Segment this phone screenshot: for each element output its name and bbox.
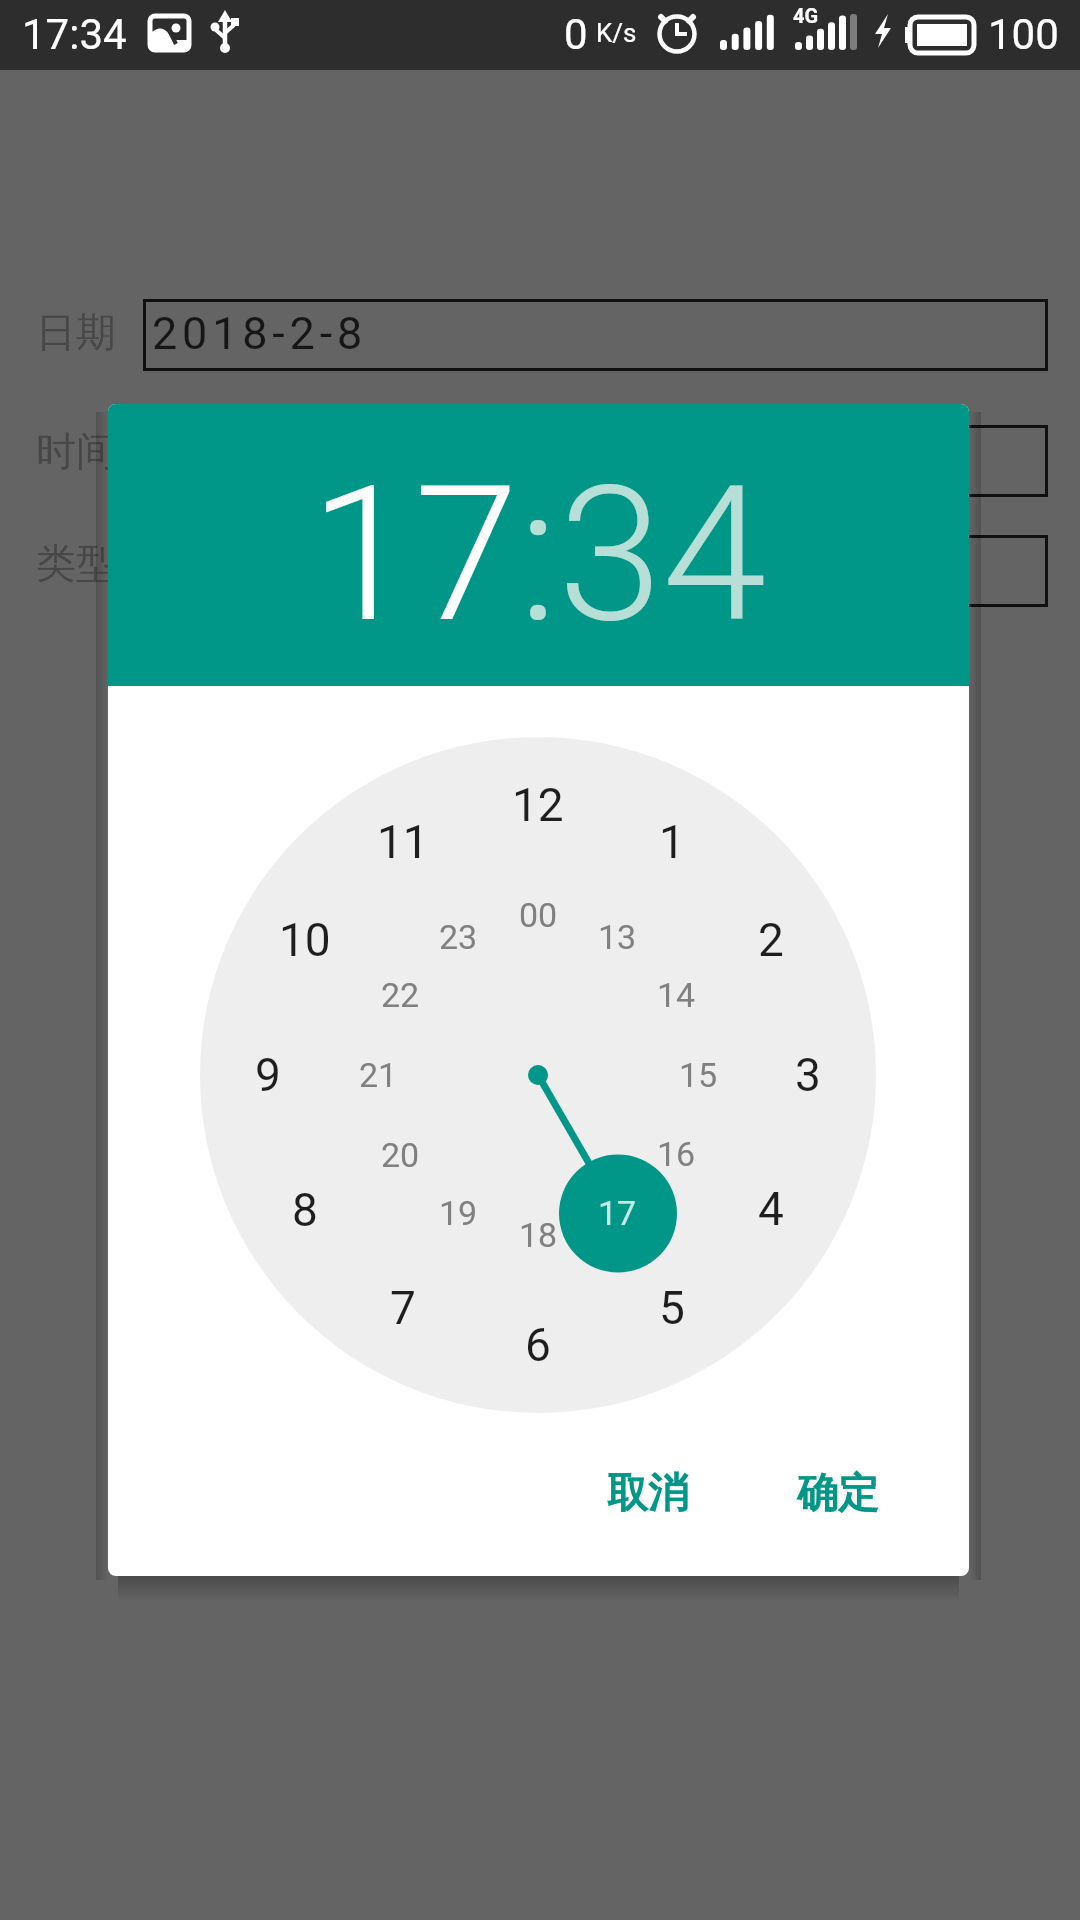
button[interactable]: 7 xyxy=(343,1268,463,1348)
staticText: 13 xyxy=(598,917,637,957)
staticText: 23 xyxy=(439,917,478,957)
staticText: 19 xyxy=(439,1193,478,1233)
button[interactable]: 22 xyxy=(340,955,460,1035)
staticText: 类型 xyxy=(36,538,116,588)
staticText: 10 xyxy=(279,913,331,967)
button[interactable]: 8 xyxy=(245,1170,365,1250)
button[interactable]: 21 xyxy=(318,1035,438,1115)
staticText: 17 xyxy=(598,1193,637,1233)
button[interactable]: 14 xyxy=(616,955,736,1035)
staticText: 15 xyxy=(679,1055,718,1095)
staticText: 22 xyxy=(381,975,420,1015)
staticText: 2018-2-8 xyxy=(152,307,368,360)
button[interactable]: 9 xyxy=(208,1035,328,1115)
staticText: 11 xyxy=(377,815,429,869)
staticText: 6 xyxy=(525,1318,551,1372)
button[interactable]: 12 xyxy=(478,765,598,845)
staticText: 3 xyxy=(795,1048,821,1102)
button[interactable]: 16 xyxy=(616,1114,736,1194)
staticText: 14 xyxy=(657,975,696,1015)
staticText: 18 xyxy=(519,1215,558,1255)
staticText: 5 xyxy=(659,1281,685,1335)
staticText: 00 xyxy=(519,895,558,935)
staticText: 17:34 xyxy=(22,10,127,59)
staticText: K/s xyxy=(596,18,637,48)
button[interactable]: 1 xyxy=(612,802,732,882)
staticText: 取消 xyxy=(607,1468,689,1520)
button[interactable]: 取消 xyxy=(548,1439,748,1549)
button[interactable]: 13 xyxy=(557,897,677,977)
staticText: 1 xyxy=(659,815,685,869)
button[interactable]: 11 xyxy=(343,802,463,882)
button[interactable] xyxy=(143,535,1048,607)
button[interactable]: 20 xyxy=(340,1115,460,1195)
button[interactable]: 23 xyxy=(398,897,518,977)
staticText: 9 xyxy=(255,1048,281,1102)
staticText: 确定 xyxy=(797,1468,879,1520)
staticText: 2 xyxy=(758,913,784,967)
button[interactable]: 2 xyxy=(711,900,831,980)
staticText: 21 xyxy=(359,1055,398,1095)
staticText: 4G xyxy=(793,4,819,27)
staticText: 7 xyxy=(390,1281,416,1335)
button[interactable]: 18 xyxy=(478,1195,598,1275)
staticText: 100 xyxy=(988,10,1059,59)
button[interactable]: 6 xyxy=(478,1305,598,1385)
staticText: 8 xyxy=(292,1183,318,1237)
button[interactable]: 17 xyxy=(557,1173,677,1253)
button[interactable]: 3 xyxy=(748,1035,868,1115)
button[interactable]: 10 xyxy=(245,900,365,980)
staticText: 日期 xyxy=(36,307,116,357)
button[interactable]: 5 xyxy=(612,1268,732,1348)
staticText: 0 xyxy=(564,10,588,59)
staticText: 4 xyxy=(758,1182,784,1236)
button[interactable] xyxy=(143,299,1048,371)
staticText: 16 xyxy=(657,1134,696,1174)
button[interactable]: 4 xyxy=(711,1169,831,1249)
button[interactable]: 15 xyxy=(638,1035,758,1115)
staticText: 12 xyxy=(512,778,564,832)
staticText: 时间 xyxy=(36,426,116,476)
staticText: 17:34 xyxy=(310,445,767,665)
button[interactable]: 确定 xyxy=(738,1439,938,1549)
button[interactable] xyxy=(143,425,1048,497)
staticText: 20 xyxy=(381,1135,420,1175)
button[interactable]: 19 xyxy=(398,1173,518,1253)
button[interactable]: 00 xyxy=(478,875,598,955)
